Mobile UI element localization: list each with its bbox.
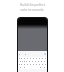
button[interactable] bbox=[32, 63, 35, 66]
button[interactable] bbox=[37, 60, 40, 63]
staticText: Build the perfect bbox=[20, 3, 45, 7]
staticText: note in seconds bbox=[20, 8, 44, 12]
button[interactable] bbox=[40, 60, 43, 63]
button[interactable] bbox=[29, 57, 32, 60]
button[interactable] bbox=[42, 66, 47, 69]
button[interactable] bbox=[23, 66, 26, 69]
button[interactable] bbox=[20, 63, 23, 66]
button[interactable] bbox=[25, 60, 28, 63]
button[interactable] bbox=[28, 60, 31, 63]
button[interactable] bbox=[23, 63, 26, 66]
button[interactable] bbox=[21, 60, 23, 63]
button[interactable] bbox=[19, 60, 21, 63]
button[interactable] bbox=[32, 57, 35, 60]
button[interactable] bbox=[41, 57, 44, 60]
button[interactable] bbox=[38, 57, 41, 60]
button[interactable] bbox=[20, 57, 23, 60]
button[interactable] bbox=[26, 63, 29, 66]
button[interactable] bbox=[43, 60, 46, 63]
button[interactable] bbox=[31, 60, 34, 63]
button[interactable] bbox=[41, 63, 44, 66]
button[interactable] bbox=[34, 60, 37, 63]
button[interactable] bbox=[44, 63, 47, 66]
button[interactable] bbox=[35, 63, 38, 66]
button[interactable] bbox=[44, 57, 47, 60]
button[interactable] bbox=[23, 60, 25, 63]
button[interactable] bbox=[29, 63, 32, 66]
button[interactable] bbox=[38, 63, 41, 66]
button[interactable] bbox=[18, 63, 20, 66]
button[interactable] bbox=[26, 57, 29, 60]
button[interactable] bbox=[35, 57, 38, 60]
button[interactable] bbox=[39, 66, 42, 69]
button[interactable] bbox=[18, 57, 20, 60]
button[interactable] bbox=[18, 66, 23, 69]
button[interactable] bbox=[23, 57, 26, 60]
